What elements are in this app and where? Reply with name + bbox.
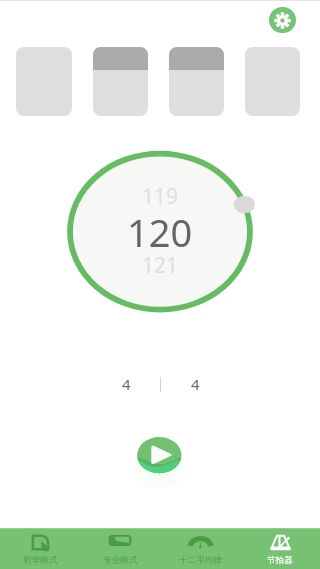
button[interactable]: 4 bbox=[92, 372, 160, 396]
button[interactable]: Settings bbox=[269, 7, 296, 33]
button[interactable] bbox=[169, 47, 224, 116]
staticText: 初学模式 bbox=[23, 555, 58, 566]
button[interactable] bbox=[93, 47, 148, 116]
button[interactable]: 4 bbox=[161, 372, 229, 396]
staticText: 专业模式 bbox=[103, 555, 138, 566]
staticText: 节拍器 bbox=[267, 555, 293, 566]
staticText: 十二平均律 bbox=[179, 555, 222, 566]
staticText: 121 bbox=[142, 251, 179, 280]
staticText: 120 bbox=[127, 206, 193, 258]
button[interactable]: 十二平均律 bbox=[160, 529, 240, 569]
button[interactable] bbox=[245, 47, 300, 116]
button[interactable] bbox=[16, 47, 72, 116]
button[interactable]: 节拍器 bbox=[240, 529, 320, 569]
button[interactable]: 初学模式 bbox=[0, 529, 80, 569]
button[interactable]: 专业模式 bbox=[80, 529, 160, 569]
staticText: 4 bbox=[191, 374, 200, 394]
staticText: 4 bbox=[122, 374, 131, 394]
button[interactable]: Play bbox=[133, 432, 187, 480]
staticText: 119 bbox=[142, 182, 179, 211]
